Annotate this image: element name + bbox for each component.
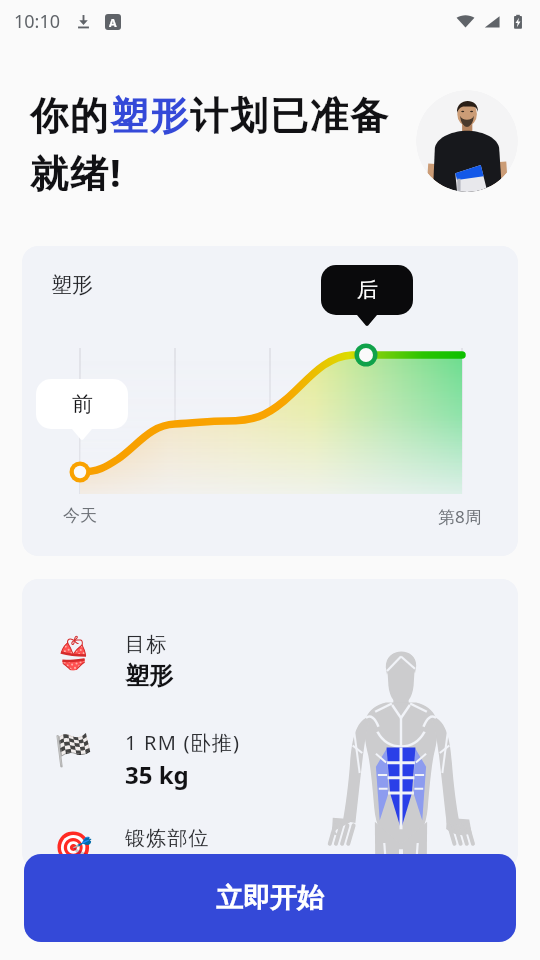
button[interactable]: 👙 [22, 579, 518, 869]
staticText: 10:10 [14, 9, 61, 34]
button[interactable]: Trainer profile [416, 90, 518, 192]
staticText: 第8周 [438, 505, 482, 528]
staticText: 👙 [54, 635, 93, 671]
button[interactable]: 塑形 [22, 246, 518, 556]
staticText: 塑形 [125, 661, 173, 691]
staticText: 锻炼部位 [125, 826, 210, 851]
staticText: 前 [72, 391, 93, 417]
staticText: 你的塑形计划已准备就绪! [30, 92, 410, 198]
staticText: 今天 [63, 505, 97, 526]
staticText: 35 kg [125, 758, 189, 791]
staticText: 目标 [125, 632, 168, 657]
staticText: A [109, 15, 117, 30]
staticText: 后 [357, 277, 378, 303]
staticText: 塑形 [51, 272, 93, 298]
staticText: 🎯 [54, 829, 93, 865]
staticText: 1 RM (卧推) [125, 729, 241, 756]
button[interactable]: 立即开始 [24, 854, 516, 942]
staticText: 🏁 [54, 732, 93, 768]
staticText: 立即开始 [216, 881, 324, 915]
